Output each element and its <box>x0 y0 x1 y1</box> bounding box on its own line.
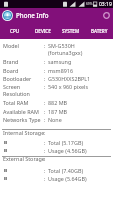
staticText: : <box>44 139 46 146</box>
staticText: (fortuna3gxx) <box>48 49 83 56</box>
button[interactable]: Available RAM <box>0 108 113 115</box>
button[interactable]: SYSTEM <box>57 22 85 39</box>
staticText: 69% <box>86 2 93 6</box>
staticText: Usage (4.56GB) <box>48 147 87 154</box>
staticText: DEVICE <box>35 28 51 34</box>
button[interactable]: : <box>0 167 113 174</box>
button[interactable]: BATERY <box>85 22 113 39</box>
button[interactable]: Total RAM <box>0 99 113 106</box>
button[interactable]: CPU <box>0 22 29 39</box>
button[interactable]: Screen <box>0 83 113 97</box>
staticText: Board <box>3 67 19 74</box>
button[interactable]: Model <box>0 42 113 56</box>
button[interactable]: Brand <box>0 58 113 65</box>
button[interactable]: Bootloader <box>0 75 113 82</box>
staticText: : <box>44 147 46 154</box>
staticText: BATERY <box>91 28 108 34</box>
staticText: : <box>44 175 46 182</box>
staticText: Bootloader <box>3 75 32 82</box>
button[interactable]: DEVICE <box>29 22 57 39</box>
staticText: Resolution <box>3 90 30 97</box>
staticText: Total RAM <box>3 99 29 106</box>
staticText: Available RAM <box>3 108 39 115</box>
staticText: : <box>44 116 46 123</box>
staticText: Usage (5.64GB) <box>48 175 87 182</box>
button[interactable]: : <box>0 175 113 182</box>
staticText: Phone Info <box>16 11 49 19</box>
staticText: Model <box>3 42 19 49</box>
staticText: : <box>44 108 46 115</box>
staticText: SYSTEM <box>62 28 80 34</box>
staticText: Screen <box>3 83 21 90</box>
button[interactable]: Refresh <box>101 10 111 20</box>
staticText: 540 x 960 pixels <box>48 83 89 90</box>
staticText: External Storage <box>3 155 45 162</box>
staticText: Internal Storage <box>3 129 45 136</box>
staticText: Brand <box>3 58 19 65</box>
staticText: msm8916 <box>48 67 73 74</box>
staticText: samsung <box>48 58 72 65</box>
staticText: : <box>44 99 46 106</box>
staticText: : <box>44 58 46 65</box>
staticText: : <box>44 83 46 90</box>
staticText: CPU <box>10 28 20 34</box>
button[interactable]: Board <box>0 67 113 74</box>
button[interactable]: : <box>0 139 113 146</box>
staticText: Total (7.40GB) <box>48 167 84 174</box>
staticText: : <box>44 75 46 82</box>
staticText: : <box>44 67 46 74</box>
button[interactable]: Internal Storage <box>0 129 113 136</box>
staticText: : <box>44 129 46 136</box>
staticText: SM-G530H <box>48 42 75 49</box>
button[interactable]: Networks Type <box>0 116 113 123</box>
staticText: 187 MB <box>48 108 68 115</box>
staticText: G530HXXS2BPL1 <box>48 75 91 82</box>
staticText: : <box>44 42 46 49</box>
staticText: Networks Type <box>3 116 41 123</box>
staticText: None <box>48 116 62 123</box>
staticText: : <box>44 155 46 162</box>
staticText: 882 MB <box>48 99 68 106</box>
staticText: : <box>44 167 46 174</box>
staticText: Total (5.17GB) <box>48 139 84 146</box>
button[interactable]: External Storage <box>0 155 113 162</box>
button[interactable]: : <box>0 147 113 154</box>
staticText: 03:19 <box>99 1 112 8</box>
